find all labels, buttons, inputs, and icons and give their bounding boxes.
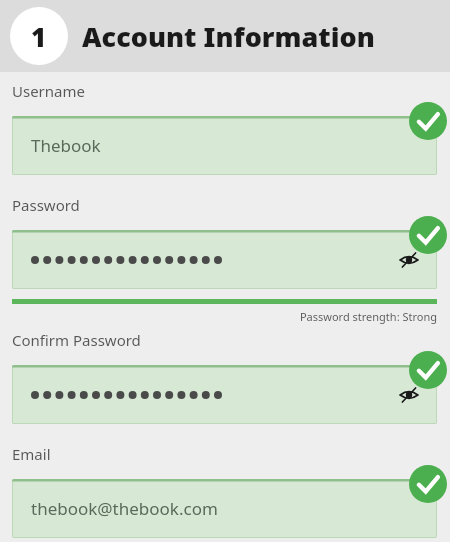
button[interactable]: Toggle password visibility: [12, 365, 437, 424]
staticText: Account Information: [82, 18, 375, 55]
staticText: Username: [12, 81, 85, 101]
button[interactable]: Thebook: [12, 116, 437, 175]
button[interactable]: Toggle password visibility: [12, 230, 437, 289]
staticText: Password: [12, 195, 80, 215]
staticText: Thebook: [31, 134, 101, 157]
other: Valid: [409, 351, 447, 389]
other: Valid: [409, 216, 447, 254]
staticText: 1: [31, 19, 47, 54]
button[interactable]: Toggle password visibility: [394, 245, 424, 275]
other: Valid: [409, 102, 447, 140]
staticText: Email: [12, 444, 51, 464]
staticText: Confirm Password: [12, 330, 141, 350]
staticText: thebook@thebook.com: [31, 497, 218, 520]
button[interactable]: Toggle password visibility: [394, 380, 424, 410]
staticText: Password strength: Strong: [299, 309, 437, 324]
button[interactable]: thebook@thebook.com: [12, 479, 437, 538]
other: Valid: [409, 465, 447, 503]
